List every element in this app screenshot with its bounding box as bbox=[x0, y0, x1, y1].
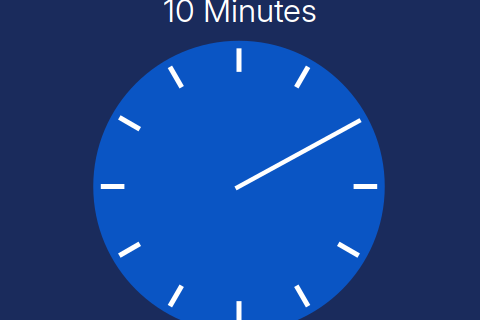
staticText: 10 Minutes bbox=[163, 0, 317, 30]
button[interactable]: 10 minute timer bbox=[0, 0, 480, 320]
